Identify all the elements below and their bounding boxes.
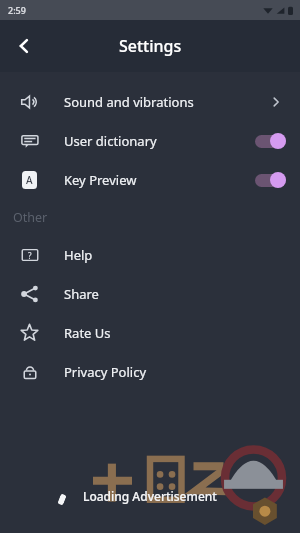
staticText: Loading Advertisement xyxy=(83,488,217,504)
staticText: 2:59 xyxy=(8,4,26,16)
button[interactable] xyxy=(255,133,286,149)
staticText: Sound and vibrations xyxy=(64,93,266,111)
button[interactable] xyxy=(255,172,286,188)
button[interactable]: Share xyxy=(0,274,300,313)
staticText: User dictionary xyxy=(64,132,255,150)
button[interactable]: Back xyxy=(4,26,44,66)
button[interactable]: Sound and vibrations xyxy=(0,82,300,121)
staticText: Share xyxy=(64,285,286,303)
staticText: Help xyxy=(64,246,286,264)
button[interactable]: User dictionary xyxy=(0,121,300,160)
staticText: ? xyxy=(28,250,32,261)
button[interactable]: Rate Us xyxy=(0,313,300,352)
staticText: A xyxy=(26,173,33,187)
button[interactable]: A xyxy=(0,160,300,199)
staticText: Other xyxy=(13,209,48,226)
button[interactable]: ? xyxy=(0,235,300,274)
button[interactable]: Privacy Policy xyxy=(0,352,300,391)
staticText: Key Preview xyxy=(64,171,255,189)
staticText: Privacy Policy xyxy=(64,363,286,381)
staticText: Settings xyxy=(119,35,182,57)
staticText: Rate Us xyxy=(64,324,286,342)
